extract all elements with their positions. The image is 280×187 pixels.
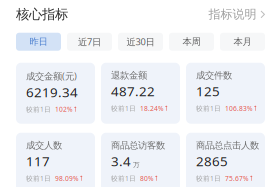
staticText: 较前1日 (26, 174, 51, 183)
staticText: 117 (26, 152, 50, 170)
staticText: 指标说明 (208, 7, 256, 22)
button[interactable]: 本月 (220, 33, 265, 51)
staticText: 125 (196, 82, 220, 100)
staticText: 102% (55, 105, 73, 114)
staticText: 较前1日 (196, 104, 221, 113)
staticText: 较前1日 (111, 104, 136, 113)
staticText: 较前1日 (111, 174, 136, 183)
staticText: 昨日 (29, 36, 47, 47)
button[interactable]: 商品总访客数 (101, 133, 180, 187)
staticText: 18.24% (140, 104, 164, 113)
staticText: 较前1日 (26, 105, 51, 114)
button[interactable]: 退款金额 (101, 63, 180, 124)
button[interactable]: 近30日 (118, 33, 163, 51)
staticText: 3.4 (111, 152, 131, 170)
staticText: 成交人数 (26, 140, 62, 151)
staticText: 商品总访客数 (111, 140, 165, 151)
staticText: 退款金额 (111, 70, 147, 81)
staticText: 80% (140, 174, 154, 183)
staticText: 核心指标 (16, 6, 68, 23)
button[interactable]: 商品总点击人数 (186, 133, 265, 187)
button[interactable]: 成交金额(元) (16, 63, 95, 124)
staticText: 本周 (182, 36, 200, 47)
staticText: 75.67% (225, 174, 249, 183)
button[interactable]: 成交件数 (186, 63, 265, 124)
staticText: 商品总点击人数 (196, 140, 259, 151)
staticText: 6219.34 (26, 83, 78, 101)
staticText: 近30日 (126, 35, 154, 48)
staticText: 2865 (196, 152, 228, 170)
button[interactable]: 近7日 (67, 33, 112, 51)
staticText: 106.83% (225, 104, 253, 113)
button[interactable]: 昨日 (16, 33, 61, 51)
button[interactable]: 成交人数 (16, 133, 95, 187)
staticText: 近7日 (78, 35, 101, 48)
staticText: 成交件数 (196, 70, 232, 81)
staticText: 成交金额(元) (26, 70, 77, 82)
button[interactable]: 指标说明 (198, 5, 265, 24)
staticText: 较前1日 (196, 174, 221, 183)
staticText: 98.09% (55, 174, 79, 183)
staticText: 万 (133, 161, 140, 169)
staticText: 487.22 (111, 82, 155, 100)
button[interactable]: 本周 (169, 33, 214, 51)
staticText: 本月 (233, 36, 251, 47)
